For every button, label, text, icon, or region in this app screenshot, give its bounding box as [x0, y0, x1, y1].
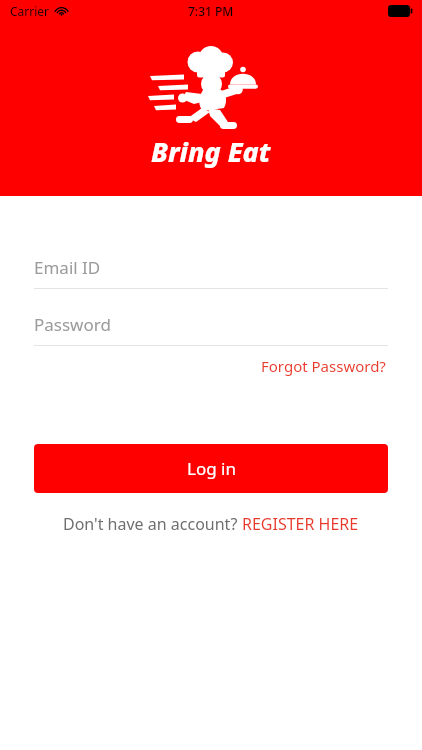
staticText: Password: [34, 313, 111, 336]
button[interactable]: Forgot Password?: [259, 354, 388, 378]
staticText: Carrier: [10, 3, 50, 19]
button[interactable]: REGISTER HERE: [242, 513, 359, 535]
staticText: Log in: [187, 457, 236, 480]
staticText: 7:31 PM: [188, 3, 234, 19]
staticText: Bring Eat: [151, 133, 271, 170]
staticText: Email ID: [34, 256, 101, 279]
staticText: Forgot Password?: [261, 356, 386, 376]
button[interactable]: Log in: [34, 444, 388, 493]
button[interactable]: Password: [34, 313, 388, 346]
staticText: Don't have an account?: [63, 513, 242, 535]
other: Battery full: [388, 5, 413, 17]
other: Wi-Fi signal: [55, 6, 68, 16]
button[interactable]: Email ID: [34, 256, 388, 289]
staticText: REGISTER HERE: [242, 513, 359, 535]
